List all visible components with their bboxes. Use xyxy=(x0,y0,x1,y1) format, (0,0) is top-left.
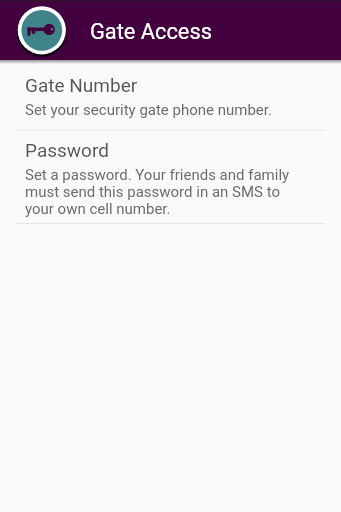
staticText: Password xyxy=(25,139,109,161)
button[interactable]: Password xyxy=(0,131,341,223)
button[interactable]: Gate Access, open navigation xyxy=(12,0,72,60)
staticText: Set your security gate phone number. xyxy=(25,101,272,119)
button[interactable]: Gate Number xyxy=(0,64,341,130)
staticText: Gate Number xyxy=(25,74,138,96)
staticText: Set a password. Your friends and family … xyxy=(25,166,293,217)
staticText: Gate Access xyxy=(90,19,212,45)
